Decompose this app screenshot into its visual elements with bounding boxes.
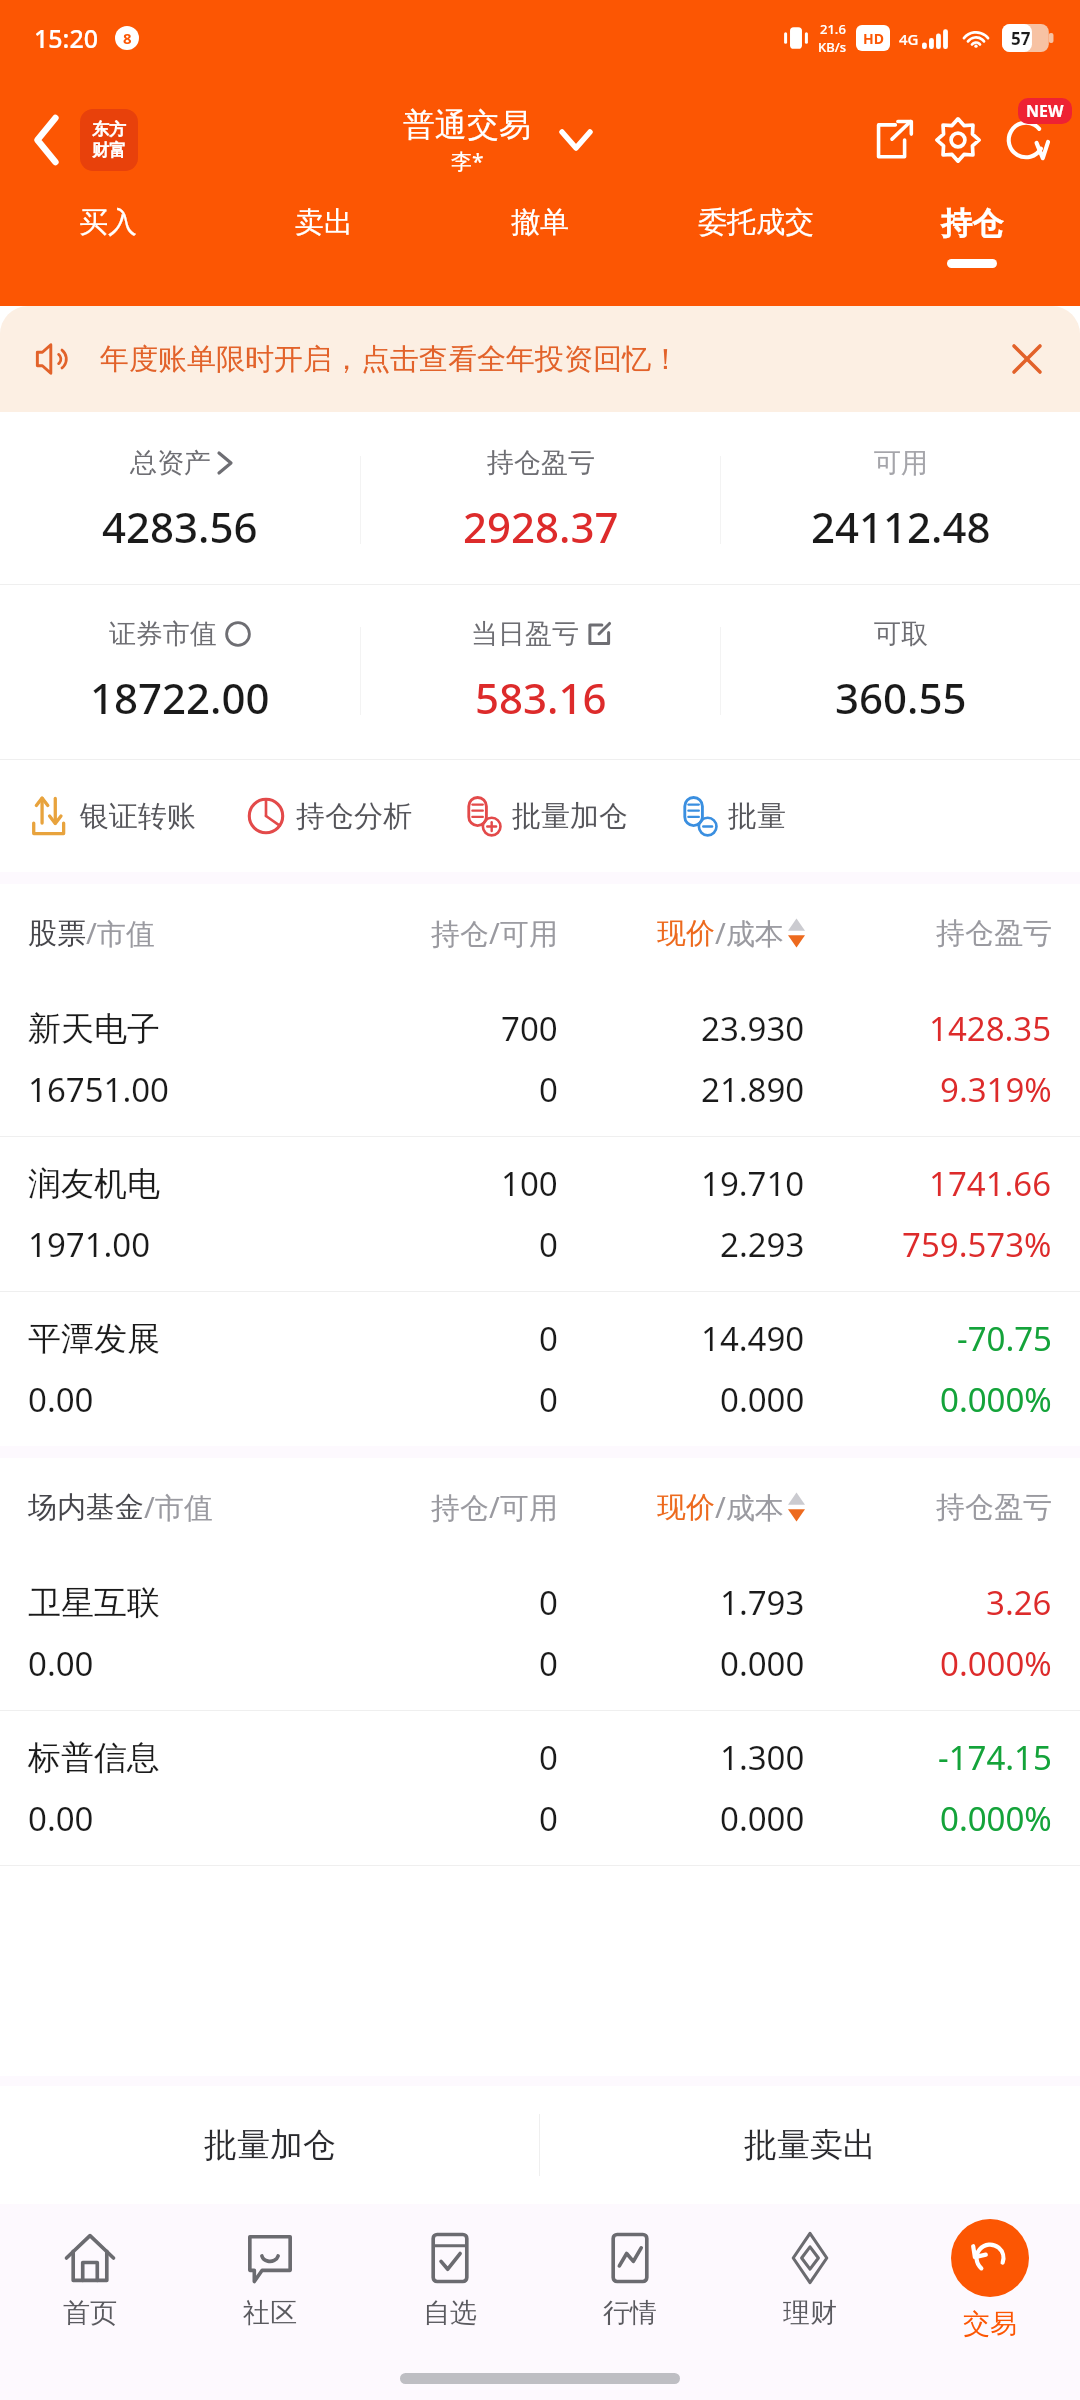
staticText: /市值 (86, 913, 155, 953)
button[interactable]: 持仓分析 (244, 794, 412, 838)
staticText: 0.00 (28, 1796, 94, 1841)
staticText: 现价 (657, 1489, 715, 1526)
button[interactable]: Settings (926, 108, 990, 172)
button[interactable]: 持仓盈亏 (361, 446, 720, 554)
staticText: 4283.56 (102, 498, 258, 554)
staticText: 0 (539, 1796, 558, 1841)
button[interactable]: 证券市值 (0, 617, 360, 725)
staticText: 24112.48 (811, 498, 991, 554)
staticText: 证券市值 (109, 617, 217, 651)
button[interactable]: Switch account (553, 117, 599, 163)
button[interactable]: 当日盈亏 (361, 617, 720, 725)
button[interactable]: 年度账单限时开启，点击查看全年投资回忆！ (0, 306, 1080, 412)
staticText: 14.490 (701, 1316, 805, 1361)
staticText: 0 (539, 1316, 558, 1361)
staticText: 总资产 (130, 446, 211, 480)
button[interactable]: 首页 (0, 2204, 180, 2356)
button[interactable]: 社区 (180, 2204, 360, 2356)
staticText: 年度账单限时开启，点击查看全年投资回忆！ (100, 341, 680, 378)
staticText: 行情 (603, 2296, 657, 2330)
button[interactable]: 可用 (721, 446, 1080, 554)
staticText: 0.000 (720, 1377, 805, 1422)
button[interactable]: 理财 (720, 2204, 900, 2356)
staticText: 交易 (963, 2307, 1017, 2341)
staticText: 现价 (657, 915, 715, 952)
button[interactable]: Close (1000, 332, 1054, 386)
staticText: 19.710 (701, 1161, 805, 1206)
staticText: 15:20 (34, 21, 99, 55)
staticText: 0 (539, 1641, 558, 1686)
staticText: 委托成交 (698, 204, 814, 241)
staticText: 持仓分析 (296, 798, 412, 835)
staticText: 3.26 (986, 1580, 1052, 1625)
button[interactable]: 新天电子 (0, 982, 1080, 1136)
staticText: 批量加仓 (204, 2124, 336, 2166)
staticText: 首页 (63, 2296, 117, 2330)
staticText: 持仓/可用 (431, 1487, 558, 1527)
staticText: 平潭发展 (28, 1318, 160, 1360)
staticText: 0.00 (28, 1377, 94, 1422)
staticText: 4G (899, 29, 919, 49)
staticText: 16751.00 (28, 1067, 169, 1112)
button[interactable]: 撤单 (432, 204, 648, 294)
button[interactable]: 委托成交 (648, 204, 864, 294)
staticText: 0 (539, 1222, 558, 1267)
button[interactable]: 平潭发展 (0, 1292, 1080, 1446)
button[interactable]: 批量卖出 (540, 2086, 1080, 2204)
button[interactable]: Share (860, 108, 924, 172)
button[interactable]: 银证转账 (28, 794, 196, 838)
staticText: 1428.35 (929, 1006, 1052, 1051)
button[interactable]: 卫星互联 (0, 1556, 1080, 1710)
staticText: /成本 (715, 913, 784, 953)
button[interactable]: 润友机电 (0, 1137, 1080, 1291)
button[interactable]: Back (18, 111, 76, 169)
staticText: 700 (501, 1006, 558, 1051)
staticText: 21.6 (820, 20, 846, 38)
button[interactable]: 普通交易 (399, 105, 535, 176)
staticText: -70.75 (957, 1316, 1052, 1361)
staticText: 东方 (92, 119, 126, 140)
staticText: 1971.00 (28, 1222, 151, 1267)
staticText: 股票 (28, 915, 86, 952)
button[interactable]: 买入 (0, 204, 216, 294)
button[interactable]: 持仓 (864, 204, 1080, 294)
button[interactable]: 标普信息 (0, 1711, 1080, 1865)
staticText: 2.293 (720, 1222, 805, 1267)
staticText: /成本 (715, 1487, 784, 1527)
staticText: 0 (539, 1067, 558, 1112)
button[interactable]: 批量加仓 (460, 794, 628, 838)
button[interactable]: 可取 (721, 617, 1080, 725)
staticText: 57 (1011, 27, 1031, 50)
staticText: 0.000 (720, 1641, 805, 1686)
staticText: 撤单 (511, 204, 569, 241)
staticText: 社区 (243, 2296, 297, 2330)
staticText: 卖出 (295, 204, 353, 241)
button[interactable]: East Money (80, 109, 138, 171)
button[interactable]: 批量加仓 (0, 2086, 539, 2204)
staticText: 场内基金 (28, 1489, 144, 1526)
staticText: 0.00 (28, 1641, 94, 1686)
button[interactable]: Refresh (990, 104, 1062, 176)
staticText: 23.930 (701, 1006, 805, 1051)
staticText: 自选 (423, 2296, 477, 2330)
staticText: 9.319% (940, 1067, 1052, 1112)
staticText: 0.000% (940, 1377, 1052, 1422)
staticText: 1741.66 (929, 1161, 1052, 1206)
staticText: 1.300 (720, 1735, 805, 1780)
button[interactable]: 自选 (360, 2204, 540, 2356)
button[interactable]: 交易 (900, 2204, 1080, 2356)
staticText: 润友机电 (28, 1163, 160, 1205)
staticText: NEW (1026, 100, 1064, 122)
staticText: 财富 (92, 140, 126, 161)
staticText: KB/s (818, 38, 847, 56)
staticText: 持仓/可用 (431, 913, 558, 953)
button[interactable]: 行情 (540, 2204, 720, 2356)
staticText: 批量卖出 (744, 2124, 876, 2166)
staticText: 21.890 (701, 1067, 805, 1112)
staticText: 持仓盈亏 (487, 446, 595, 480)
staticText: 18722.00 (90, 669, 270, 725)
staticText: 360.55 (835, 669, 967, 725)
button[interactable]: 批量 (676, 794, 786, 838)
button[interactable]: 总资产 (0, 446, 360, 554)
button[interactable]: 卖出 (216, 204, 432, 294)
